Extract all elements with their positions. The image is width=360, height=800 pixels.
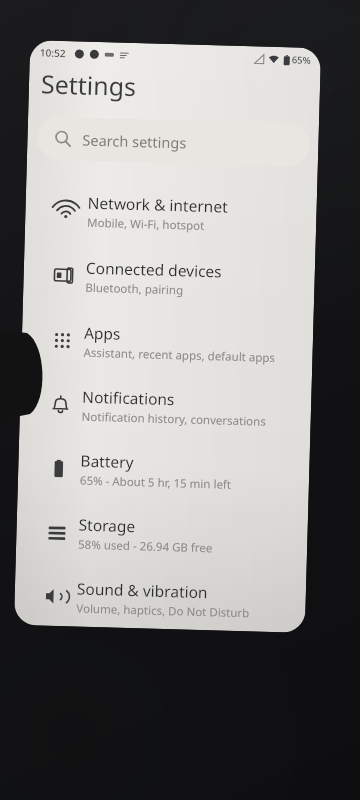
button[interactable]: Apps xyxy=(21,310,314,376)
other: Search xyxy=(54,130,72,147)
staticText: Sound & vibration xyxy=(77,578,208,602)
staticText: Volume, haptics, Do Not Disturb xyxy=(76,601,249,621)
staticText: Assistant, recent apps, default apps xyxy=(83,345,276,366)
staticText: Notifications xyxy=(82,386,176,409)
staticText: Notification history, conversations xyxy=(81,409,267,430)
staticText: Search settings xyxy=(82,130,187,152)
button[interactable]: Notifications xyxy=(19,374,312,440)
button[interactable]: Sound & vibration xyxy=(14,566,306,632)
button[interactable]: Network & internet xyxy=(25,180,317,246)
staticText: 58% used - 26.94 GB free xyxy=(78,537,213,556)
staticText: 10:52 xyxy=(40,45,66,60)
staticText: Connected devices xyxy=(86,257,222,281)
staticText: Mobile, Wi-Fi, hotspot xyxy=(87,215,205,234)
staticText: Bluetooth, pairing xyxy=(85,280,183,298)
staticText: Storage xyxy=(78,514,136,536)
staticText: 65% - About 5 hr, 15 min left xyxy=(80,473,232,493)
button[interactable]: Search xyxy=(37,116,310,167)
staticText: Network & internet xyxy=(87,192,228,217)
staticText: 65% xyxy=(292,53,311,67)
staticText: Apps xyxy=(84,322,121,344)
button[interactable]: Connected devices xyxy=(23,245,315,311)
staticText: Settings xyxy=(40,66,137,103)
button[interactable]: Battery xyxy=(17,438,310,504)
button[interactable]: Storage xyxy=(16,502,308,568)
staticText: Battery xyxy=(80,450,135,472)
